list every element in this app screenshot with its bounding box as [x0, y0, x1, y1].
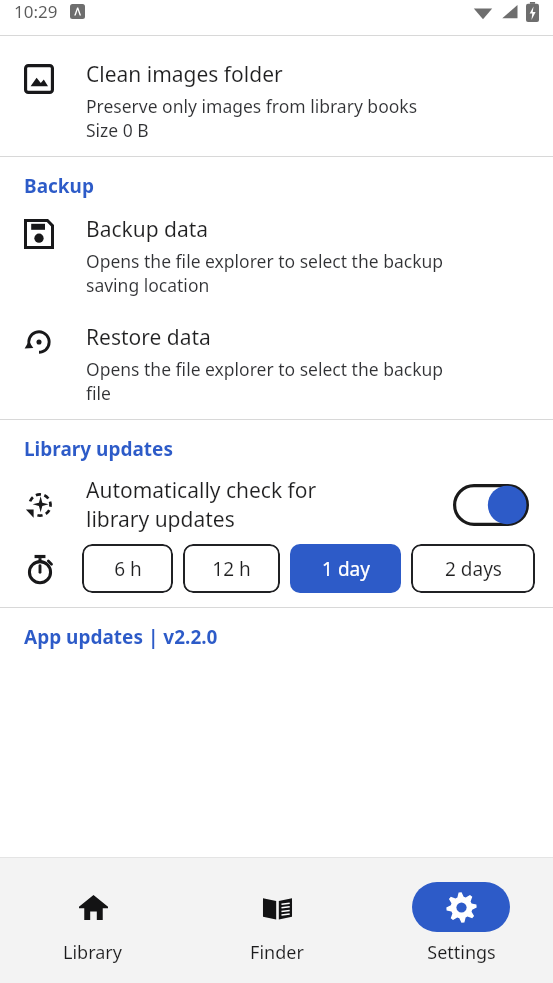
button[interactable]: Finder: [185, 876, 369, 965]
button[interactable]: 1 day: [290, 544, 401, 593]
button[interactable]: Restore data: [0, 311, 553, 405]
button[interactable]: Library: [0, 876, 185, 965]
staticText: 10:29: [14, 0, 58, 23]
staticText: Size 0 B: [86, 118, 149, 142]
button[interactable]: 6 h: [82, 544, 173, 593]
staticText: file: [86, 381, 111, 405]
button[interactable]: Backup data: [0, 203, 553, 297]
staticText: 12 h: [212, 556, 251, 582]
button[interactable]: 12 h: [183, 544, 280, 593]
staticText: saving location: [86, 273, 210, 297]
staticText: 2 days: [445, 556, 502, 582]
button[interactable]: Settings: [369, 876, 553, 965]
staticText: Library: [63, 940, 122, 965]
staticText: library updates: [86, 505, 235, 534]
button[interactable]: 2 days: [411, 544, 535, 593]
button[interactable]: Automatically check for: [0, 466, 553, 534]
staticText: Finder: [250, 940, 304, 965]
staticText: Library updates: [24, 436, 173, 462]
staticText: Opens the file explorer to select the ba…: [86, 357, 444, 381]
button[interactable]: Automatically check for library updates …: [451, 482, 531, 528]
staticText: App updates | v2.2.0: [24, 624, 218, 650]
staticText: Preserve only images from library books: [86, 94, 418, 118]
staticText: Automatically check for: [86, 476, 317, 505]
staticText: Settings: [427, 940, 496, 965]
staticText: Clean images folder: [86, 60, 283, 89]
staticText: 6 h: [114, 556, 142, 582]
button[interactable]: Clean images folder: [0, 48, 553, 142]
staticText: Opens the file explorer to select the ba…: [86, 249, 444, 273]
staticText: Restore data: [86, 323, 211, 352]
staticText: Backup: [24, 173, 94, 199]
staticText: 1 day: [322, 556, 370, 582]
staticText: Backup data: [86, 215, 209, 244]
